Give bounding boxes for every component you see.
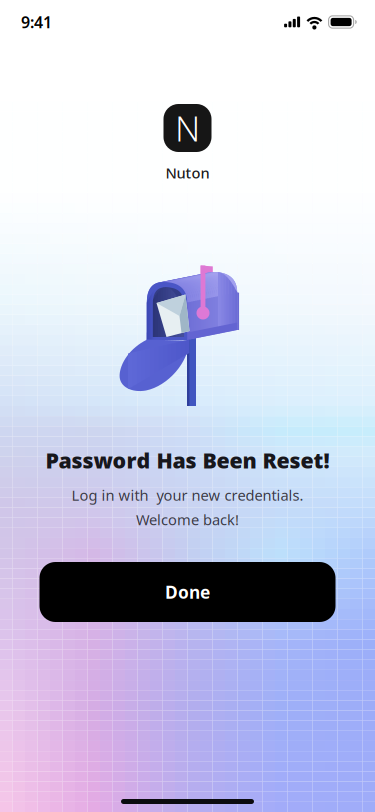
staticText: Log in with your new credentials. <box>71 485 303 505</box>
staticText: Welcome back! <box>136 510 239 529</box>
staticText: Password Has Been Reset! <box>45 446 329 474</box>
staticText: N <box>175 105 200 151</box>
staticText: Nuton <box>165 163 209 182</box>
staticText: Done <box>165 580 210 603</box>
button[interactable]: Done <box>39 562 335 622</box>
staticText: 9:41 <box>21 11 52 33</box>
